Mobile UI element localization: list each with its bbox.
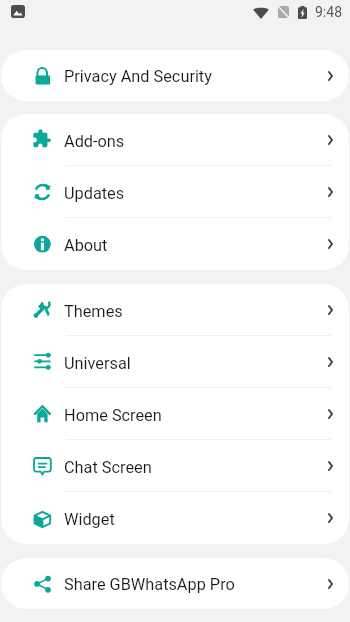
staticText: Themes	[64, 302, 123, 321]
staticText: Chat Screen	[64, 458, 152, 477]
staticText: Home Screen	[64, 406, 162, 425]
staticText: Privacy And Security	[64, 67, 212, 86]
staticText: About	[64, 236, 108, 255]
staticText: Widget	[64, 510, 115, 529]
button[interactable]: Add-ons	[1, 114, 349, 166]
button[interactable]: Universal	[1, 336, 349, 388]
staticText: Add-ons	[64, 132, 125, 151]
button[interactable]: About	[1, 218, 349, 270]
button[interactable]: Themes	[1, 284, 349, 336]
button[interactable]: Share GBWhatsApp Pro	[1, 558, 349, 609]
button[interactable]: Updates	[1, 166, 349, 218]
button[interactable]: Privacy And Security	[1, 50, 349, 101]
staticText: Universal	[64, 354, 131, 373]
staticText: 9:48	[315, 4, 342, 20]
button[interactable]: Widget	[1, 492, 349, 544]
button[interactable]: Home Screen	[1, 388, 349, 440]
staticText: Share GBWhatsApp Pro	[64, 575, 235, 594]
staticText: Updates	[64, 184, 125, 203]
button[interactable]: Chat Screen	[1, 440, 349, 492]
